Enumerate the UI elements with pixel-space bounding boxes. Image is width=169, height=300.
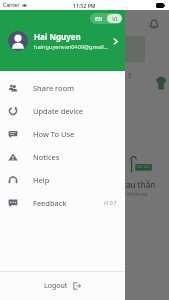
button[interactable]: phòng tắm — [8, 152, 82, 204]
button[interactable]: How To Use — [0, 122, 125, 145]
staticText: How To Use — [33, 129, 75, 139]
button[interactable]: cau thần — [122, 149, 169, 201]
staticText: cau thần — [122, 179, 156, 190]
staticText: Carrier — [3, 2, 20, 9]
staticText: v1.0.7 — [104, 200, 117, 206]
staticText: 1 devices — [122, 190, 148, 198]
staticText: phòng tắm — [8, 182, 51, 193]
staticText: Share room — [33, 83, 75, 93]
staticText: Camera IPC 1 — [87, 71, 132, 81]
button[interactable]: Share room — [0, 76, 125, 99]
staticText: Hai Nguyen — [34, 31, 81, 42]
staticText: VI — [112, 15, 118, 22]
staticText: 2 devices — [8, 136, 34, 144]
staticText: Feedback — [33, 198, 67, 208]
button[interactable]: Phòng ngủ — [8, 95, 82, 147]
button[interactable]: bếp — [86, 95, 161, 147]
button[interactable]: Help — [0, 168, 125, 191]
button[interactable]: Update device — [0, 99, 125, 122]
staticText: 11:52 PM — [73, 2, 96, 9]
button[interactable]: Feedback — [0, 191, 125, 214]
staticText: Notices — [33, 152, 60, 162]
staticText: 1 devices — [8, 193, 34, 201]
button[interactable]: Camera IPC 1 — [86, 36, 161, 88]
button[interactable]: Notifications — [148, 18, 160, 30]
button[interactable] — [8, 36, 82, 88]
staticText: Update device — [33, 106, 84, 116]
staticText: hainguyenvan0409@gmail... — [34, 43, 109, 51]
staticText: Phòng ngủ — [8, 125, 50, 136]
button[interactable]: Logout — [0, 272, 125, 300]
staticText: EN — [95, 15, 103, 22]
button[interactable]: EN — [90, 13, 122, 24]
staticText: Help — [33, 175, 50, 185]
staticText: Logout — [44, 281, 68, 291]
button[interactable]: Hai Nguyen — [0, 28, 125, 54]
button[interactable]: Notices — [0, 145, 125, 168]
